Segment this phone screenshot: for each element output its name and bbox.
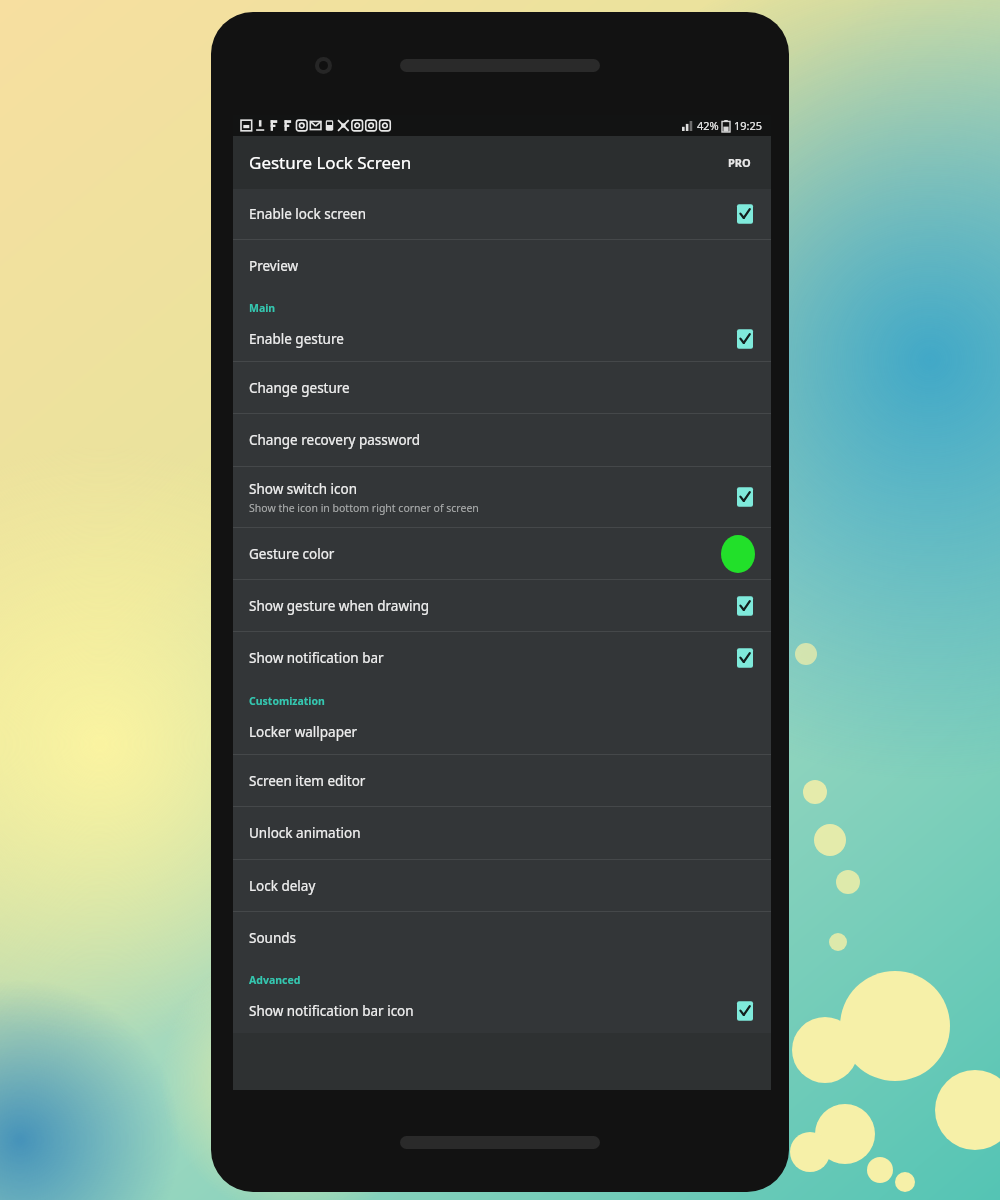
staticText: Unlock animation [249,824,361,842]
staticText: Show the icon in bottom right corner of … [249,501,479,515]
staticText: Locker wallpaper [249,723,358,741]
other: Toggle [735,595,755,617]
button[interactable]: Locker wallpaper [233,710,771,754]
staticText: Gesture Lock Screen [249,151,412,174]
other: Toggle [735,203,755,225]
staticText: 19:25 [734,118,763,133]
staticText: Enable gesture [249,330,344,348]
staticText: Sounds [249,929,297,947]
staticText: Show notification bar [249,649,384,667]
button[interactable]: Show notification bar icon [233,989,771,1033]
button[interactable]: Enable gesture [233,317,771,361]
staticText: 42% [697,118,719,133]
staticText: Change gesture [249,379,350,397]
button[interactable]: Show switch icon [233,467,771,527]
staticText: Show gesture when drawing [249,597,430,615]
other: Toggle [735,486,755,508]
button[interactable]: Sounds [233,912,771,963]
button[interactable]: Show gesture when drawing [233,580,771,631]
button[interactable]: PRO [724,151,755,174]
staticText: Show notification bar icon [249,1002,414,1020]
staticText: Enable lock screen [249,205,367,223]
staticText: Customization [249,694,325,708]
other: Gesture color [721,535,755,573]
button[interactable]: Enable lock screen [233,189,771,239]
button[interactable]: Lock delay [233,860,771,911]
button[interactable]: Change gesture [233,362,771,413]
staticText: Screen item editor [249,772,366,790]
button[interactable]: Preview [233,240,771,291]
button[interactable]: Show notification bar [233,632,771,684]
staticText: PRO [728,155,751,170]
button[interactable]: Screen item editor [233,755,771,806]
button[interactable]: Gesture color [233,528,771,579]
other: Toggle [735,1000,755,1022]
staticText: Show switch icon [249,480,358,498]
staticText: Lock delay [249,877,316,895]
staticText: Main [249,301,276,315]
button[interactable]: Unlock animation [233,807,771,859]
button[interactable]: Change recovery password [233,414,771,466]
staticText: Change recovery password [249,431,421,449]
other: Toggle [735,328,755,350]
other: Toggle [735,647,755,669]
staticText: Gesture color [249,545,335,563]
staticText: Advanced [249,973,301,987]
staticText: Preview [249,257,299,275]
